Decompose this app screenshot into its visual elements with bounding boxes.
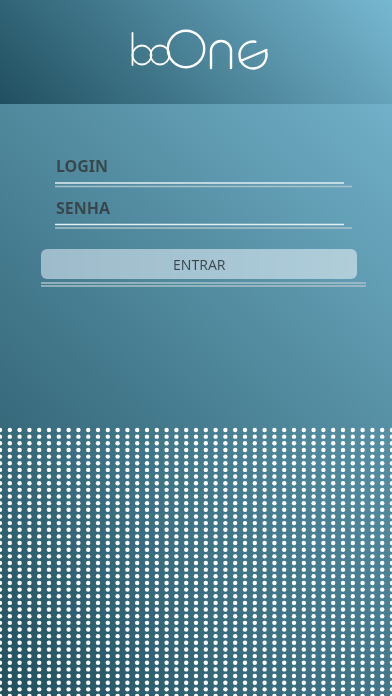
- staticText: LOGIN: [56, 155, 109, 177]
- staticText: ENTRAR: [173, 255, 226, 274]
- button[interactable]: ENTRAR: [41, 249, 357, 279]
- staticText: SENHA: [56, 197, 111, 219]
